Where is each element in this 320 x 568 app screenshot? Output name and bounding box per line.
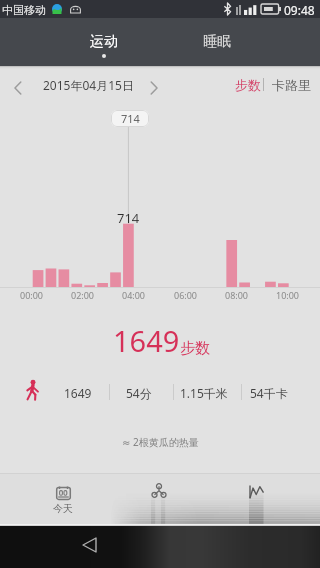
button[interactable]: 步数	[229, 74, 267, 96]
staticText: 09:48	[284, 2, 315, 18]
button[interactable]: 卡路里	[266, 74, 317, 96]
button[interactable]: Share	[111, 474, 207, 526]
staticText: 1649	[64, 385, 92, 401]
staticText: 步数	[180, 339, 210, 358]
staticText: 714	[117, 209, 140, 227]
staticText: 步数	[235, 77, 261, 93]
staticText: 02:00	[71, 289, 95, 301]
staticText: 睡眠	[203, 33, 231, 51]
staticText: 运动	[90, 33, 118, 51]
staticText: ≈ 2根黄瓜的热量	[122, 435, 199, 449]
staticText: 06:00	[174, 289, 198, 301]
button[interactable]: Previous day	[7, 77, 29, 99]
staticText: 1.15千米	[180, 385, 228, 401]
staticText: 1649	[113, 321, 180, 360]
button[interactable]: 睡眠	[165, 18, 269, 66]
button[interactable]: 运动	[52, 18, 156, 66]
staticText: 08:00	[225, 289, 249, 301]
staticText: 00:00	[20, 289, 44, 301]
staticText: 54分	[126, 385, 152, 401]
staticText: 卡路里	[272, 77, 311, 93]
staticText: 中国移动	[2, 3, 46, 17]
button[interactable]: Next day	[143, 77, 165, 99]
staticText: 10:00	[276, 289, 300, 301]
button[interactable]: Statistics	[208, 474, 304, 526]
staticText: 714	[121, 111, 140, 126]
button[interactable]: 今天	[15, 474, 111, 526]
staticText: 54千卡	[250, 385, 288, 401]
staticText: 今天	[53, 502, 73, 515]
staticText: 2015年04月15日	[43, 77, 134, 93]
staticText: 04:00	[122, 289, 146, 301]
button[interactable]: Back	[74, 530, 104, 560]
